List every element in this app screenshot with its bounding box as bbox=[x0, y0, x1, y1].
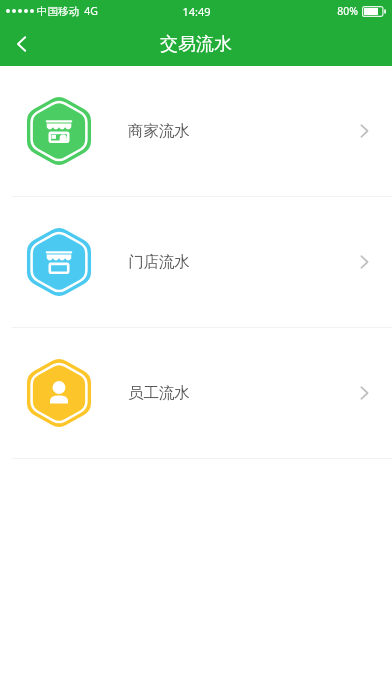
button[interactable]: Back bbox=[0, 22, 44, 66]
staticText: 交易流水 bbox=[160, 33, 232, 56]
staticText: 员工流水 bbox=[128, 383, 190, 403]
staticText: 80% bbox=[337, 4, 358, 18]
button[interactable]: 门店流水 bbox=[0, 197, 392, 327]
button[interactable]: 商家流水 bbox=[0, 66, 392, 196]
staticText: 门店流水 bbox=[128, 252, 190, 272]
staticText: 4G bbox=[84, 4, 98, 18]
staticText: 中国移动 bbox=[37, 5, 79, 18]
button[interactable]: 员工流水 bbox=[0, 328, 392, 458]
staticText: 商家流水 bbox=[128, 121, 190, 141]
staticText: 14:49 bbox=[182, 4, 211, 19]
